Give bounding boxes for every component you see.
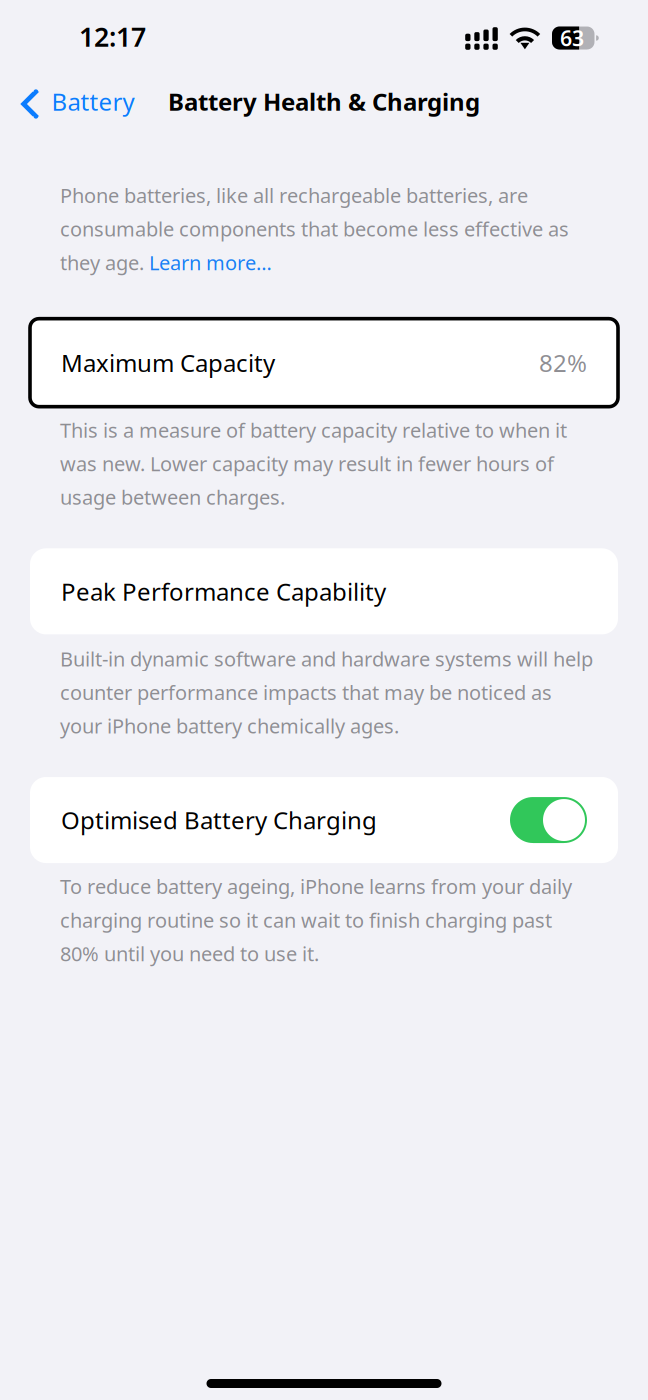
staticText: they age.: [60, 249, 149, 276]
button[interactable]: Learn more…: [149, 249, 272, 276]
button[interactable]: Maximum Capacity: [30, 319, 618, 407]
staticText: To reduce battery ageing, iPhone learns …: [60, 873, 572, 967]
button[interactable]: Optimised Battery Charging: [30, 777, 618, 863]
staticText: Battery: [51, 86, 134, 117]
staticText: 12:17: [79, 19, 146, 54]
button[interactable]: Battery: [0, 76, 148, 127]
staticText: Maximum Capacity: [61, 347, 275, 379]
staticText: Phone batteries, like all rechargeable b…: [60, 182, 569, 242]
staticText: Learn more…: [149, 249, 272, 276]
staticText: 82%: [539, 347, 587, 379]
staticText: Optimised Battery Charging: [61, 804, 377, 836]
staticText: This is a measure of battery capacity re…: [60, 417, 567, 510]
staticText: Built-in dynamic software and hardware s…: [60, 645, 593, 739]
staticText: Battery Health & Charging: [168, 86, 480, 117]
button[interactable]: Peak Performance Capability: [30, 548, 618, 634]
staticText: 63: [560, 24, 584, 52]
staticText: Peak Performance Capability: [61, 575, 386, 607]
